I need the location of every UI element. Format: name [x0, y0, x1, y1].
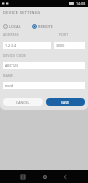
- button[interactable]: CANCEL: [3, 98, 43, 106]
- staticText: NAME: [3, 74, 14, 78]
- staticText: ADDRESS: [3, 33, 19, 37]
- staticText: 3000: [56, 43, 65, 48]
- staticText: DEVICE SETTINGS: [3, 10, 41, 15]
- button[interactable]: LOCAL: [2, 23, 22, 30]
- button[interactable]: REMOTE: [31, 23, 55, 30]
- button[interactable]: nord: [5, 82, 83, 89]
- staticText: nord: [5, 83, 14, 88]
- button[interactable]: SAVE: [46, 98, 85, 106]
- button[interactable]: Back: [58, 170, 72, 183]
- button[interactable]: Home: [38, 170, 52, 183]
- staticText: 14:08: [76, 1, 86, 6]
- staticText: SAVE: [61, 100, 70, 104]
- button[interactable]: ABC123: [5, 62, 83, 69]
- staticText: REMOTE: [38, 24, 54, 29]
- staticText: DEVICE CODE: [3, 54, 26, 58]
- staticText: 1.2.3.4: [5, 43, 17, 48]
- button[interactable]: 1.2.3.4: [5, 42, 49, 49]
- staticText: CANCEL: [16, 100, 30, 104]
- staticText: LOCAL: [9, 24, 21, 29]
- button[interactable]: Recent apps: [16, 170, 30, 183]
- staticText: PORT: [59, 33, 69, 37]
- staticText: ABC123: [5, 63, 19, 68]
- button[interactable]: 3000: [56, 42, 83, 49]
